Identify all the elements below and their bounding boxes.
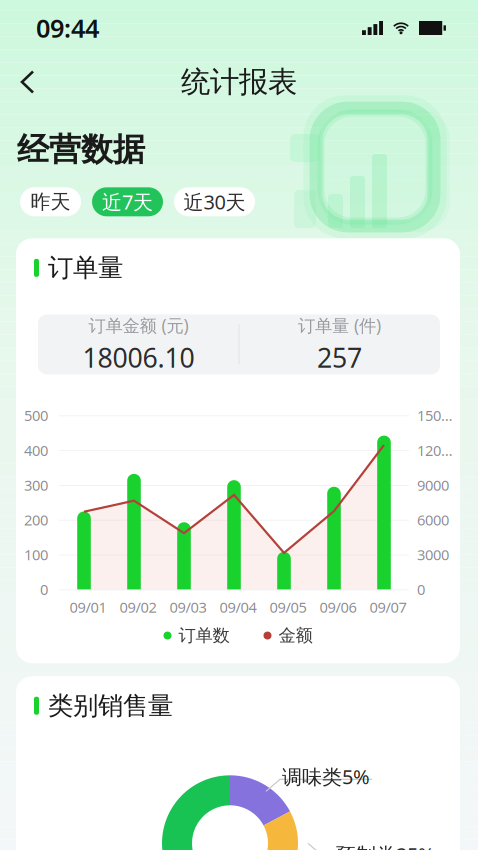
staticText: 09/02 bbox=[119, 597, 156, 617]
staticText: 9000 bbox=[417, 475, 449, 495]
staticText: 09/07 bbox=[369, 597, 406, 617]
staticText: 金额 bbox=[278, 625, 312, 646]
staticText: 6000 bbox=[417, 510, 449, 530]
staticText: 09/06 bbox=[319, 597, 356, 617]
staticText: 257 bbox=[317, 340, 362, 375]
staticText: 100 bbox=[24, 545, 48, 564]
staticText: 09/01 bbox=[69, 597, 106, 617]
staticText: 15000 bbox=[417, 406, 456, 425]
staticText: 3000 bbox=[417, 545, 449, 564]
staticText: 订单数 bbox=[178, 625, 229, 646]
staticText: 昨天 bbox=[30, 189, 70, 214]
button[interactable]: 昨天 bbox=[20, 187, 81, 216]
staticText: 近30天 bbox=[183, 188, 245, 215]
staticText: 09:44 bbox=[36, 11, 99, 45]
staticText: 09/04 bbox=[219, 597, 256, 617]
staticText: 预制类25% bbox=[336, 841, 435, 850]
staticText: 09/03 bbox=[169, 597, 206, 617]
staticText: 订单量 bbox=[48, 252, 123, 283]
staticText: 400 bbox=[24, 440, 48, 460]
button[interactable]: 近30天 bbox=[174, 187, 255, 216]
staticText: 18006.10 bbox=[82, 340, 194, 375]
staticText: 订单量 (件) bbox=[298, 314, 381, 337]
staticText: 200 bbox=[24, 510, 48, 530]
staticText: 12000 bbox=[417, 440, 456, 460]
staticText: 近7天 bbox=[102, 188, 153, 215]
staticText: 类别销售量 bbox=[48, 690, 173, 721]
button[interactable]: Back bbox=[0, 58, 49, 105]
staticText: 订单金额 (元) bbox=[88, 314, 188, 337]
staticText: 0 bbox=[417, 580, 425, 599]
staticText: 500 bbox=[24, 406, 48, 425]
staticText: 09/05 bbox=[269, 597, 306, 617]
staticText: 经营数据 bbox=[17, 130, 145, 169]
staticText: 0 bbox=[40, 580, 48, 599]
staticText: 300 bbox=[24, 475, 48, 495]
button[interactable]: 近7天 bbox=[92, 187, 163, 216]
staticText: 统计报表 bbox=[181, 64, 297, 100]
staticText: 调味类5% bbox=[282, 763, 370, 790]
